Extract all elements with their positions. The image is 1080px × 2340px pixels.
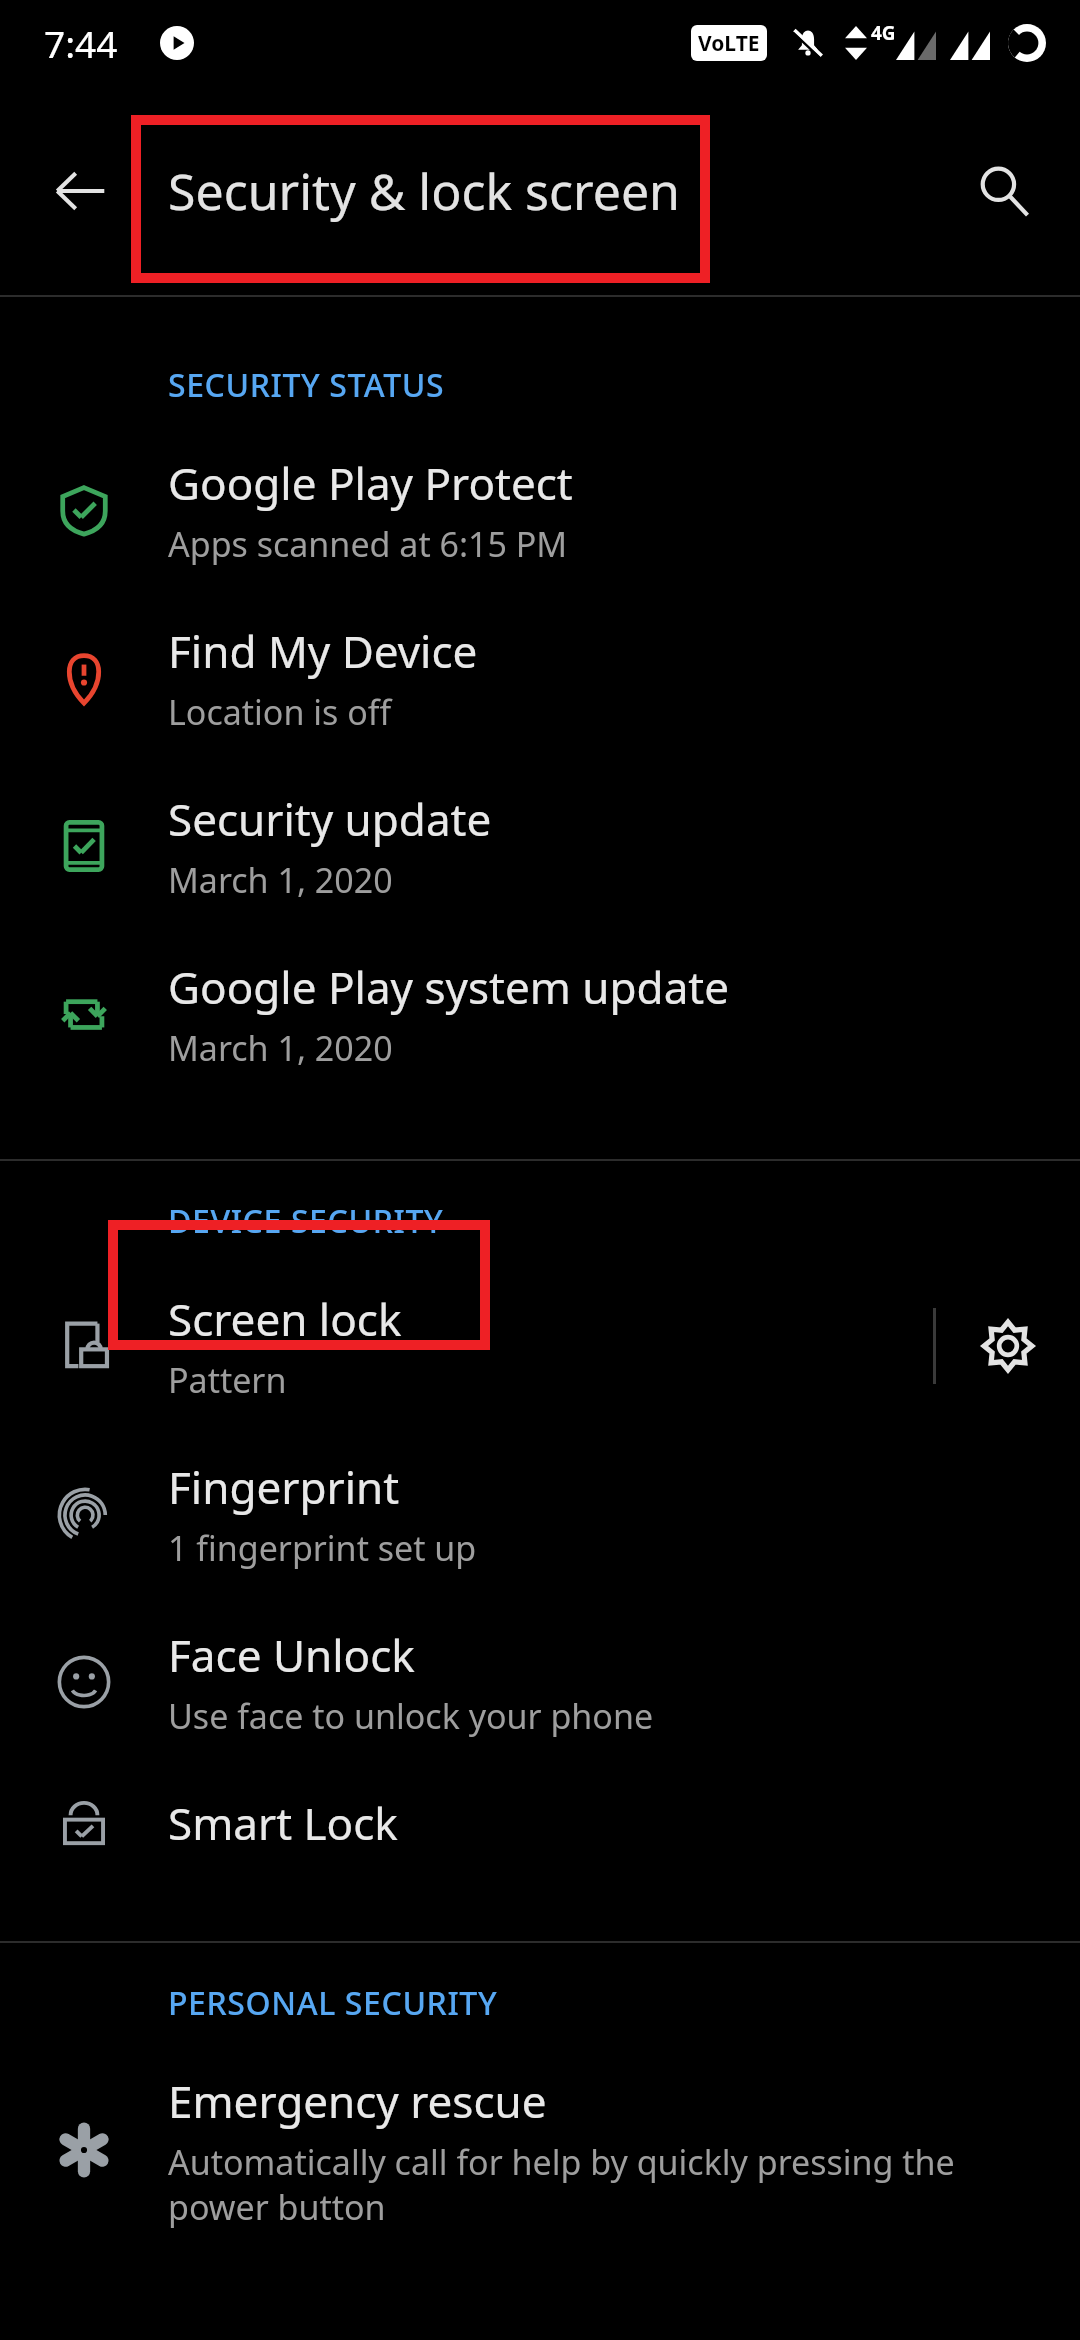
staticText: Security update — [168, 789, 492, 849]
staticText: Use face to unlock your phone — [168, 1693, 654, 1739]
staticText: VoLTE — [698, 29, 760, 58]
button[interactable]: Google Play Protect — [0, 453, 1080, 621]
button[interactable]: Search — [954, 141, 1054, 241]
staticText: Emergency rescue — [168, 2071, 547, 2131]
button[interactable]: Smart Lock — [0, 1793, 1080, 1907]
staticText: Find My Device — [168, 621, 478, 681]
staticText: 7:44 — [44, 18, 118, 68]
staticText: Smart Lock — [168, 1793, 398, 1853]
button[interactable]: Screen lock settings — [936, 1291, 1080, 1401]
staticText: Fingerprint — [168, 1457, 400, 1517]
staticText: Google Play Protect — [168, 453, 573, 513]
staticText: Security & lock screen — [168, 157, 680, 225]
staticText: Pattern — [168, 1357, 287, 1403]
staticText: Face Unlock — [168, 1625, 415, 1685]
staticText: Google Play system update — [168, 957, 730, 1017]
staticText: Apps scanned at 6:15 PM — [168, 521, 568, 567]
button[interactable]: Find My Device — [0, 621, 1080, 789]
staticText: Automatically call for help by quickly p… — [168, 2139, 1060, 2229]
staticText: PERSONAL SECURITY — [168, 1981, 498, 2025]
staticText: Screen lock — [168, 1289, 402, 1349]
staticText: March 1, 2020 — [168, 1025, 393, 1071]
button[interactable]: Fingerprint — [0, 1457, 1080, 1625]
button[interactable]: Security update — [0, 789, 1080, 957]
button[interactable]: Face Unlock — [0, 1625, 1080, 1793]
staticText: Location is off — [168, 689, 392, 735]
staticText: 1 fingerprint set up — [168, 1525, 477, 1571]
staticText: March 1, 2020 — [168, 857, 393, 903]
button[interactable]: Google Play system update — [0, 957, 1080, 1125]
staticText: SECURITY STATUS — [168, 363, 445, 407]
button[interactable]: Back — [30, 141, 130, 241]
button[interactable]: Emergency rescue — [0, 2071, 1080, 2283]
button[interactable]: Screen lock — [0, 1289, 1080, 1457]
staticText: DEVICE SECURITY — [168, 1199, 444, 1243]
staticText: 4G — [871, 20, 896, 46]
